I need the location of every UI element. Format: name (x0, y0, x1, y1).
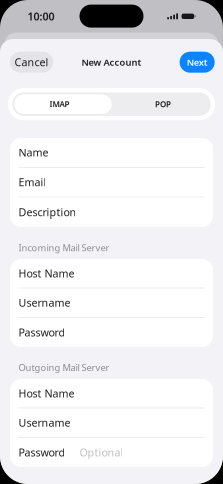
button[interactable]: IMAP (8, 88, 111, 120)
staticText: Name (18, 145, 48, 160)
button[interactable]: Password (10, 318, 213, 347)
staticText: Description (18, 205, 76, 219)
button[interactable]: Username (10, 288, 213, 317)
staticText: 10:00 (27, 9, 54, 23)
button[interactable]: Host Name (10, 259, 213, 288)
staticText: Optional (79, 445, 123, 459)
staticText: Password (18, 325, 65, 339)
staticText: Outgoing Mail Server (18, 361, 109, 374)
button[interactable]: Cancel (10, 52, 53, 73)
staticText: Cancel (14, 55, 48, 69)
button[interactable]: Email (10, 168, 213, 197)
staticText: Email (18, 175, 46, 189)
staticText: Incoming Mail Server (18, 241, 109, 254)
button[interactable]: Password (10, 438, 213, 467)
button[interactable]: Host Name (10, 379, 213, 408)
button[interactable]: POP (111, 88, 215, 120)
staticText: Host Name (18, 386, 74, 400)
staticText: Username (18, 416, 70, 430)
button[interactable]: Username (10, 408, 213, 437)
staticText: Next (187, 56, 208, 68)
staticText: Password (18, 445, 65, 459)
staticText: POP (155, 99, 171, 109)
button[interactable]: Name (10, 138, 213, 167)
staticText: Host Name (18, 266, 74, 280)
button[interactable]: Next (180, 52, 215, 73)
staticText: New Account (81, 56, 141, 68)
button[interactable]: Description (10, 197, 213, 227)
staticText: IMAP (49, 99, 69, 109)
staticText: Username (18, 296, 70, 310)
